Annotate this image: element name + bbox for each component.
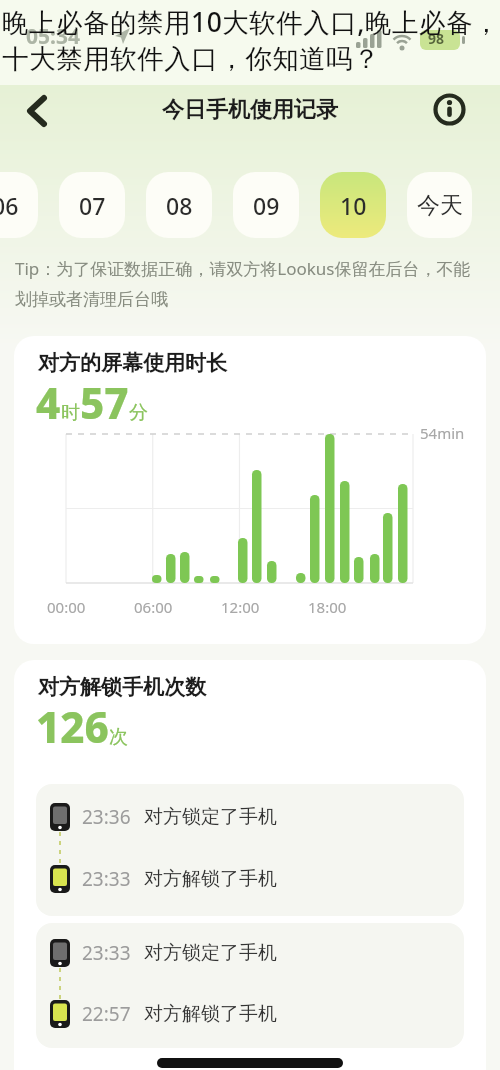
staticText: 54min xyxy=(420,423,465,443)
staticText: 对方锁定了手机 xyxy=(144,805,277,829)
staticText: 次 xyxy=(109,725,128,749)
staticText: 06 xyxy=(0,190,19,221)
staticText: 对方锁定了手机 xyxy=(144,941,277,965)
staticText: 57 xyxy=(80,374,129,431)
button[interactable]: 09 xyxy=(233,172,299,238)
staticText: 18:00 xyxy=(308,597,347,617)
button[interactable]: 10 xyxy=(320,172,386,238)
staticText: 4 xyxy=(36,374,61,431)
staticText: 10 xyxy=(340,190,367,221)
staticText: 23:33 xyxy=(82,940,131,966)
staticText: 07 xyxy=(79,190,106,221)
staticText: 今日手机使用记录 xyxy=(162,96,338,124)
button[interactable] xyxy=(428,88,470,130)
staticText: 09 xyxy=(253,190,280,221)
staticText: 00:00 xyxy=(47,597,86,617)
staticText: 98 xyxy=(428,29,445,48)
staticText: 06:00 xyxy=(134,597,173,617)
button[interactable]: 23:36 xyxy=(36,784,464,850)
staticText: 时 xyxy=(61,401,80,425)
button[interactable]: 今天 xyxy=(407,172,472,238)
staticText: 12:00 xyxy=(221,597,260,617)
staticText: 十大禁用软件入口，你知道吗？ xyxy=(2,42,380,75)
staticText: 分 xyxy=(129,401,148,425)
staticText: 对方解锁了手机 xyxy=(144,867,277,891)
staticText: 126 xyxy=(36,698,109,755)
staticText: 晚上必备的禁用10大软件入口,晚上必备， xyxy=(2,4,500,40)
button[interactable]: 22:57 xyxy=(36,981,464,1047)
staticText: 23:36 xyxy=(82,804,131,830)
button[interactable]: 08 xyxy=(146,172,212,238)
button[interactable]: 06 xyxy=(0,172,38,238)
button[interactable] xyxy=(16,89,60,133)
staticText: Tip：为了保证数据正确，请双方将Lookus保留在后台，不能 xyxy=(15,257,471,280)
button[interactable]: 23:33 xyxy=(36,923,464,986)
button[interactable]: 07 xyxy=(59,172,125,238)
staticText: 今天 xyxy=(417,191,463,220)
staticText: 划掉或者清理后台哦 xyxy=(15,289,168,310)
staticText: 22:57 xyxy=(82,1001,131,1027)
staticText: 对方的屏幕使用时长 xyxy=(38,350,227,376)
staticText: 对方解锁手机次数 xyxy=(38,674,206,700)
staticText: 23:33 xyxy=(82,866,131,892)
staticText: 对方解锁了手机 xyxy=(144,1002,277,1026)
staticText: 08 xyxy=(166,190,193,221)
button[interactable]: 23:33 xyxy=(36,846,464,912)
staticText: 05:34 xyxy=(26,22,80,51)
